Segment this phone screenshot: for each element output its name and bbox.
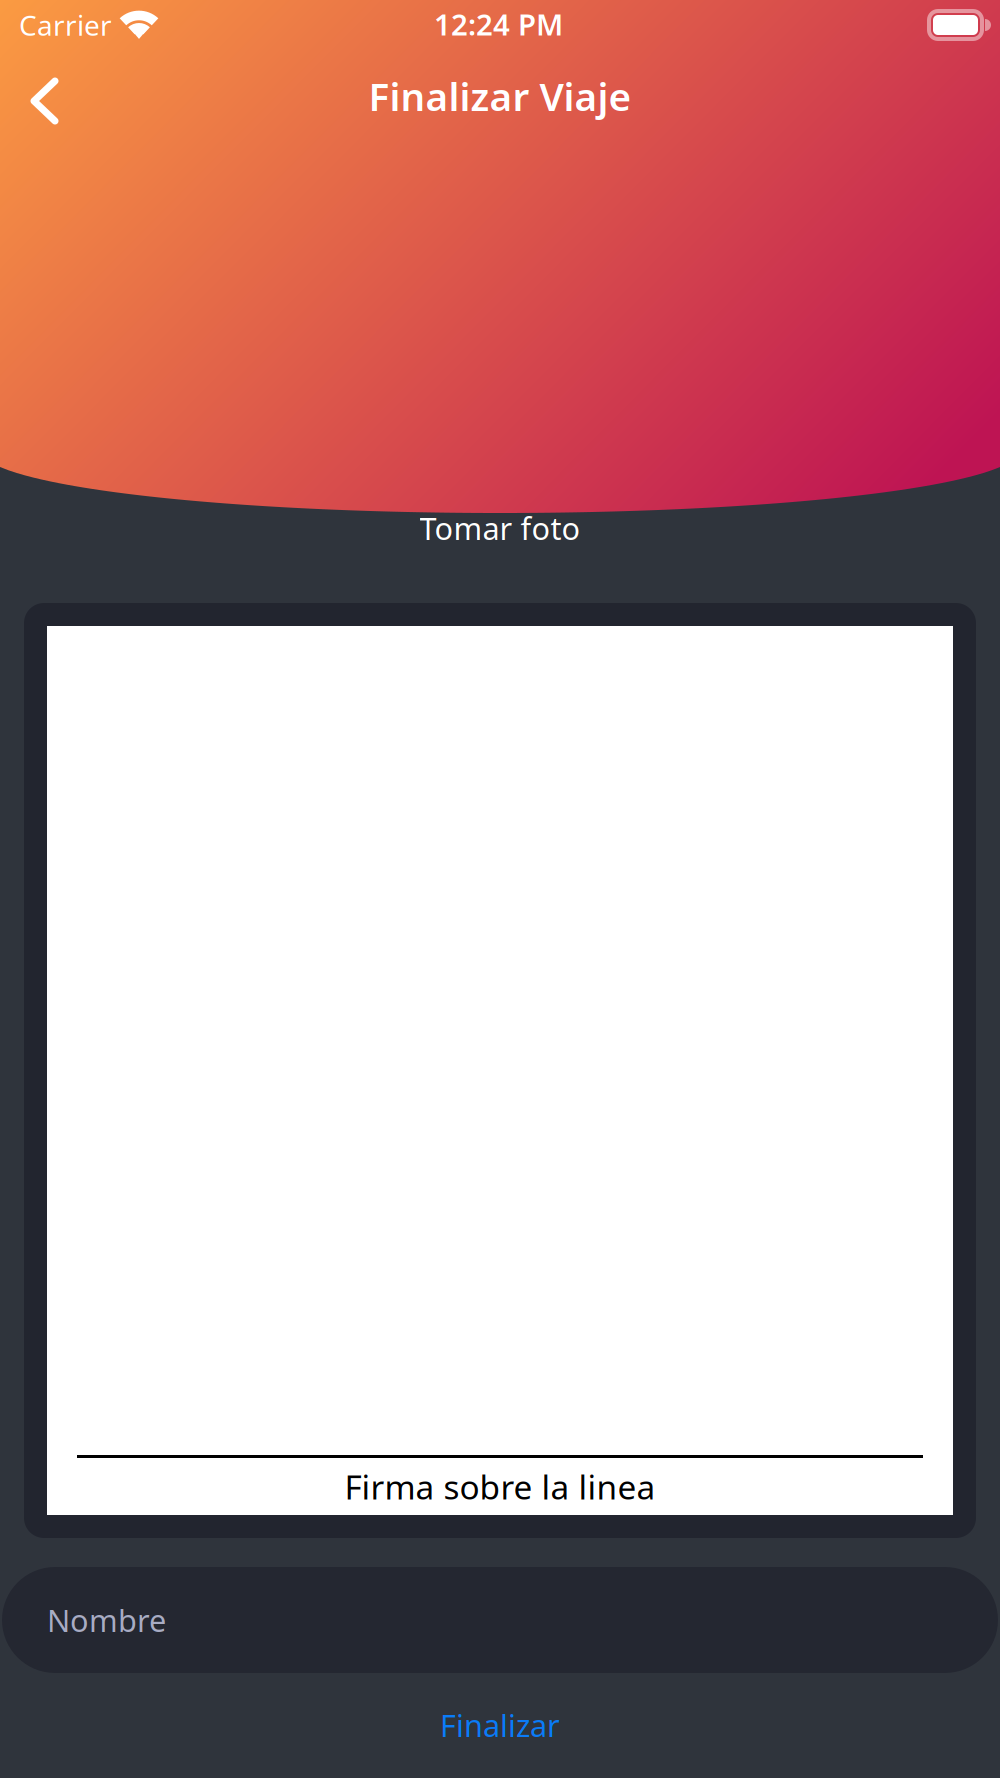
staticText: Finalizar bbox=[440, 1705, 560, 1745]
staticText: Carrier bbox=[19, 6, 112, 44]
staticText: 12:24 PM bbox=[434, 4, 563, 43]
button[interactable]: Finalizar bbox=[0, 1673, 1000, 1777]
staticText: Finalizar Viaje bbox=[368, 70, 631, 122]
button[interactable]: Tomar foto bbox=[0, 513, 1000, 543]
staticText: Tomar foto bbox=[419, 508, 580, 548]
staticText: Nombre bbox=[47, 1600, 166, 1640]
button[interactable]: Back bbox=[0, 56, 87, 132]
staticText: Firma sobre la linea bbox=[344, 1464, 655, 1509]
